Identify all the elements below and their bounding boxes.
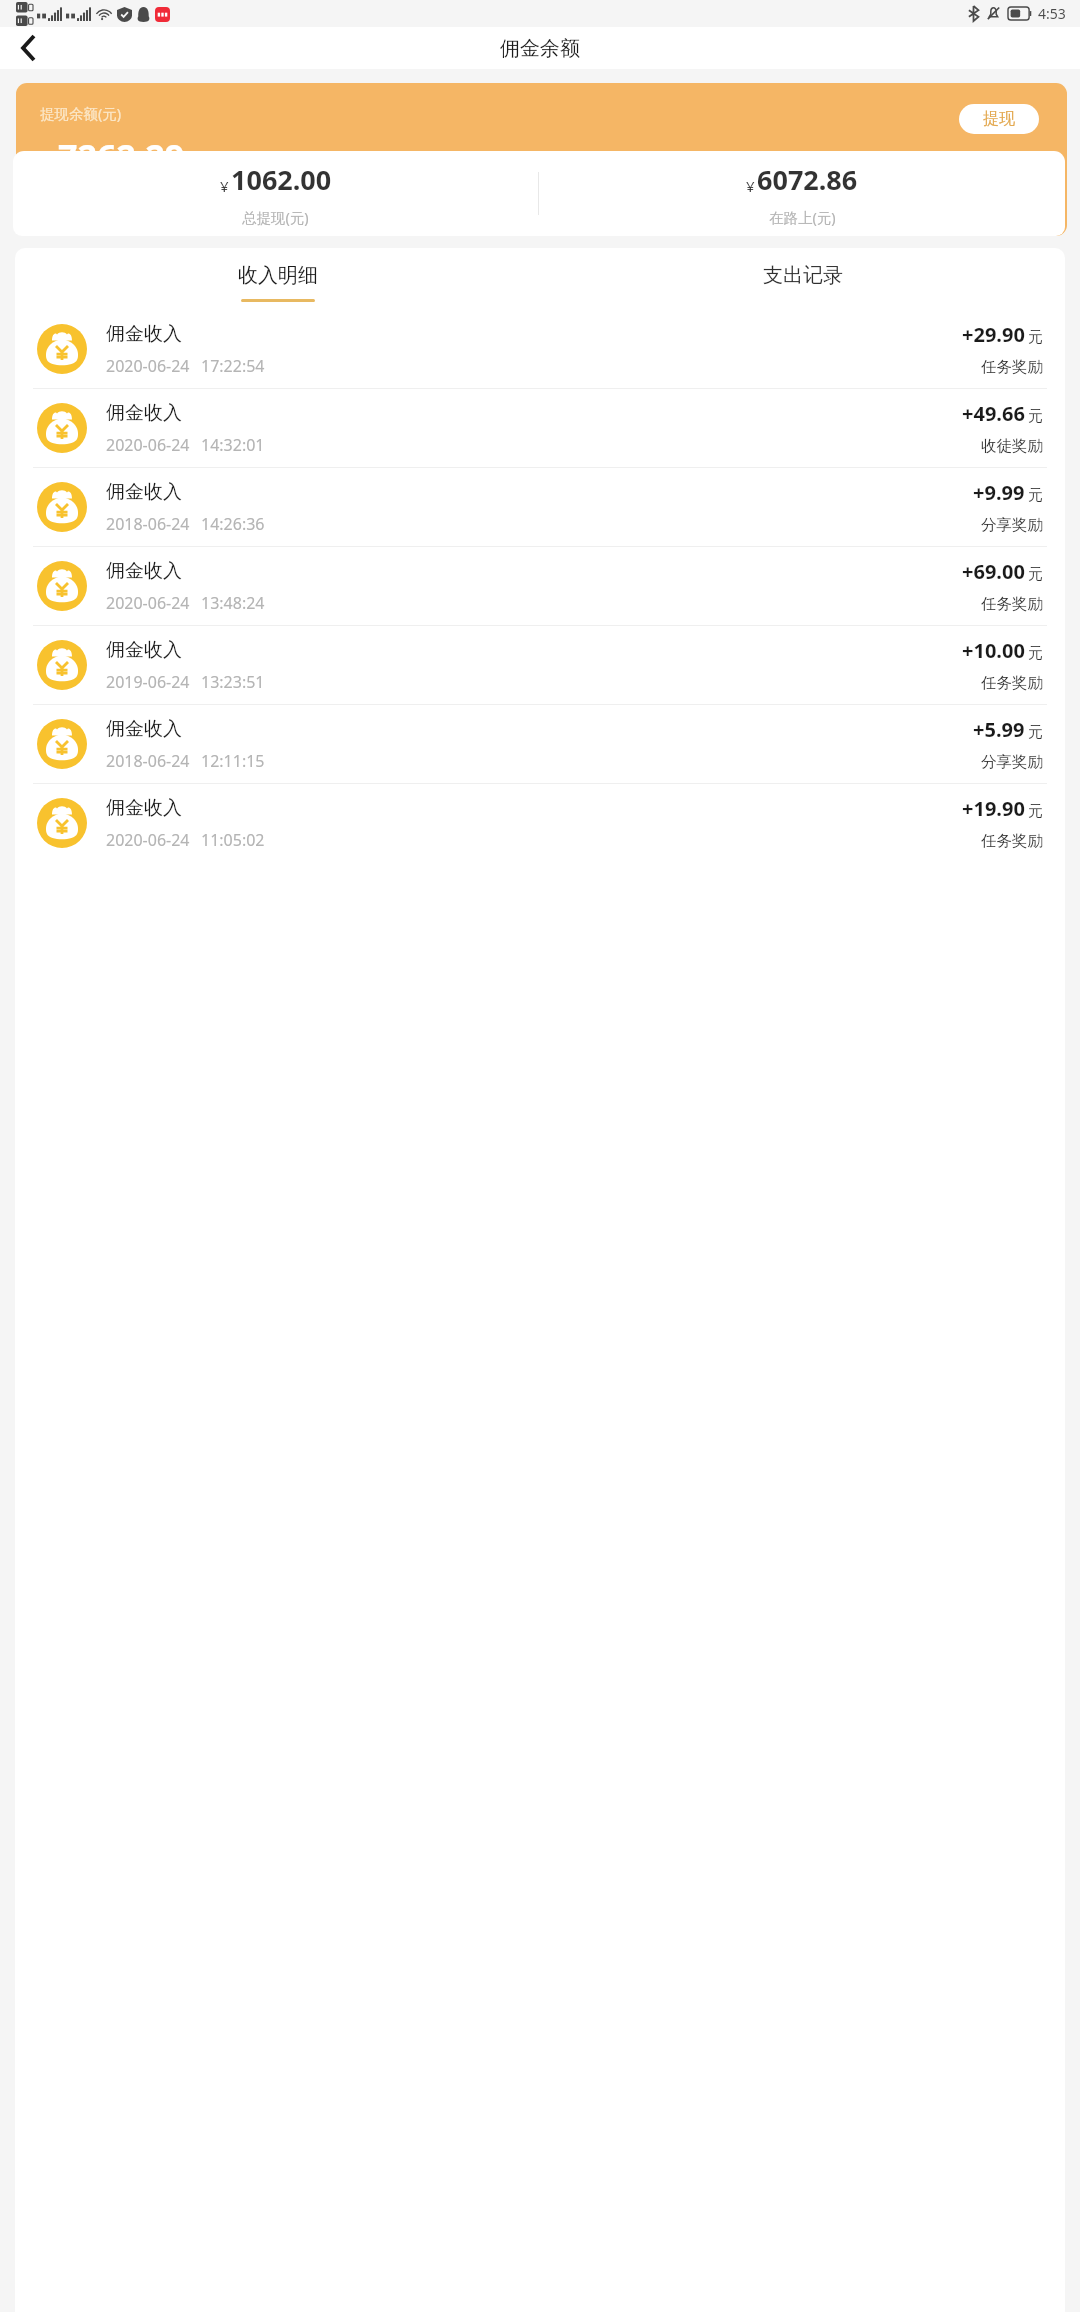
staticText: 佣金收入 xyxy=(106,322,182,346)
staticText: 佣金收入 xyxy=(106,401,182,425)
staticText: 提现 xyxy=(983,109,1015,129)
button[interactable]: Back xyxy=(4,27,52,69)
button[interactable]: 佣金收入 xyxy=(15,389,1065,467)
staticText: 佣金收入 xyxy=(106,796,182,820)
staticText: 4:53 xyxy=(1038,4,1066,23)
staticText: 2018-06-24 xyxy=(106,513,190,535)
staticText: 7262.29 xyxy=(58,133,185,179)
staticText: +9.99 xyxy=(973,479,1025,506)
staticText: 1062.00 xyxy=(231,161,332,198)
staticText: 佣金收入 xyxy=(106,480,182,504)
staticText: 元 xyxy=(1028,802,1043,821)
staticText: +49.66 xyxy=(962,400,1025,427)
staticText: 提现余额(元) xyxy=(40,103,122,123)
button[interactable]: 支出记录 xyxy=(540,248,1065,310)
button[interactable]: 收入明细 xyxy=(15,248,540,310)
staticText: 佣金余额 xyxy=(500,36,580,61)
staticText: 任务奖励 xyxy=(981,831,1043,851)
staticText: 14:26:36 xyxy=(201,513,265,535)
staticText: 17:22:54 xyxy=(201,355,265,377)
staticText: 佣金收入 xyxy=(106,717,182,741)
button[interactable]: 佣金收入 xyxy=(15,626,1065,704)
staticText: 13:48:24 xyxy=(201,592,265,614)
staticText: 2020-06-24 xyxy=(106,829,190,851)
staticText: 元 xyxy=(1028,486,1043,505)
staticText: 6072.86 xyxy=(757,161,858,198)
staticText: 2019-06-24 xyxy=(106,671,190,693)
staticText: +19.90 xyxy=(962,795,1025,822)
staticText: 收徒奖励 xyxy=(981,436,1043,456)
staticText: 元 xyxy=(1028,644,1043,663)
button[interactable]: 佣金收入 xyxy=(15,784,1065,862)
staticText: 2020-06-24 xyxy=(106,355,190,377)
staticText: 总提现(元) xyxy=(242,207,309,227)
button[interactable]: 佣金收入 xyxy=(15,705,1065,783)
staticText: 14:32:01 xyxy=(201,434,265,456)
staticText: 任务奖励 xyxy=(981,357,1043,377)
staticText: 分享奖励 xyxy=(981,515,1043,535)
staticText: 12:11:15 xyxy=(201,750,265,772)
button[interactable]: 佣金收入 xyxy=(15,547,1065,625)
staticText: 2020-06-24 xyxy=(106,592,190,614)
staticText: 13:23:51 xyxy=(201,671,265,693)
staticText: 分享奖励 xyxy=(981,752,1043,772)
staticText: 收入明细 xyxy=(238,263,318,288)
staticText: 佣金收入 xyxy=(106,559,182,583)
staticText: 佣金收入 xyxy=(106,638,182,662)
staticText: ¥ xyxy=(40,149,52,176)
staticText: 元 xyxy=(1028,565,1043,584)
staticText: ¥ xyxy=(746,176,755,196)
staticText: 元 xyxy=(1028,723,1043,742)
staticText: 支出记录 xyxy=(763,263,843,288)
staticText: +5.99 xyxy=(973,716,1025,743)
button[interactable]: 提现 xyxy=(959,104,1039,134)
staticText: 2018-06-24 xyxy=(106,750,190,772)
staticText: 任务奖励 xyxy=(981,673,1043,693)
staticText: 11:05:02 xyxy=(201,829,265,851)
staticText: +10.00 xyxy=(962,637,1025,664)
staticText: 在路上(元) xyxy=(769,207,836,227)
staticText: ¥ xyxy=(220,176,229,196)
staticText: 2020-06-24 xyxy=(106,434,190,456)
staticText: +29.90 xyxy=(962,321,1025,348)
staticText: 元 xyxy=(1028,407,1043,426)
button[interactable]: 佣金收入 xyxy=(15,468,1065,546)
staticText: 任务奖励 xyxy=(981,594,1043,614)
staticText: +69.00 xyxy=(962,558,1025,585)
button[interactable]: 佣金收入 xyxy=(15,310,1065,388)
staticText: 元 xyxy=(1028,328,1043,347)
